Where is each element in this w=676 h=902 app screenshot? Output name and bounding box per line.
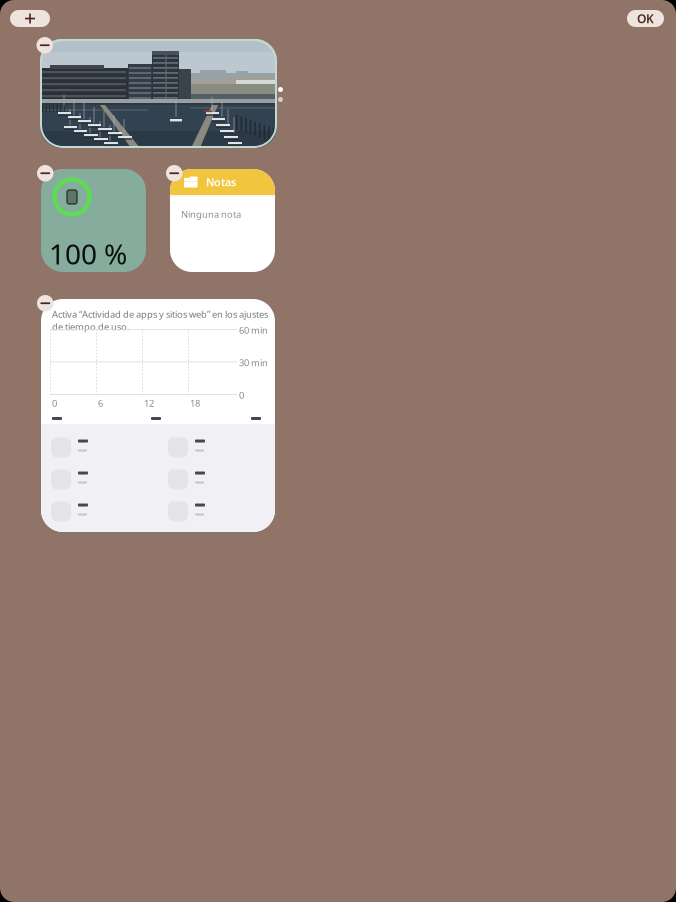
button[interactable]: Remove widget [37, 295, 53, 311]
button[interactable]: Batteries widget, 100 percent [41, 169, 146, 272]
staticText: Activa “Actividad de apps y sitios web” … [52, 308, 268, 333]
staticText: 0 [239, 389, 244, 401]
button[interactable]: Remove widget [166, 165, 182, 181]
staticText: 30 min [239, 356, 268, 369]
staticText: Ninguna nota [181, 208, 241, 220]
button[interactable]: Photos widget [40, 39, 277, 148]
staticText: 12 [144, 397, 154, 409]
button[interactable]: Remove widget [37, 165, 53, 181]
staticText: 6 [98, 397, 103, 409]
button[interactable]: Notes widget, no notes [170, 169, 275, 272]
staticText: OK [637, 10, 654, 26]
staticText: 18 [190, 397, 200, 409]
button[interactable]: Screen Time widget [41, 299, 275, 532]
staticText: Notas [206, 175, 236, 189]
button[interactable]: OK [627, 10, 664, 27]
button[interactable]: Remove widget [36, 37, 53, 53]
staticText: 100 % [49, 235, 127, 272]
staticText: 0 [52, 397, 57, 409]
staticText: 60 min [239, 324, 268, 336]
button[interactable]: Add widget [10, 10, 50, 27]
